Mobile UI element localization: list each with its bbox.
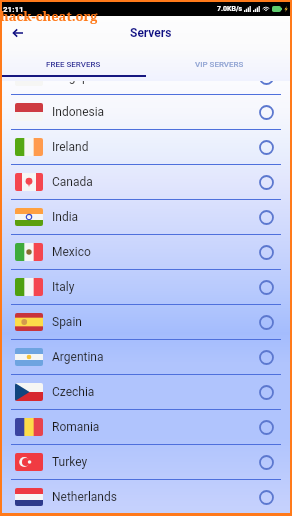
button[interactable]: Argentina: [0, 340, 292, 374]
staticText: Argentina: [52, 350, 104, 364]
button[interactable]: Ireland: [0, 130, 292, 164]
button[interactable]: VIP SERVERS: [146, 49, 292, 77]
staticText: Spain: [52, 315, 82, 329]
staticText: 7.0KB/s: [217, 5, 243, 13]
staticText: Indonesia: [52, 105, 105, 119]
staticText: FREE SERVERS: [46, 60, 101, 69]
staticText: Ireland: [52, 140, 89, 154]
staticText: Czechia: [52, 385, 95, 399]
button[interactable]: India: [0, 200, 292, 234]
staticText: India: [52, 210, 79, 224]
staticText: Turkey: [52, 455, 88, 469]
staticText: Mexico: [52, 245, 91, 259]
staticText: 21:11: [3, 5, 24, 14]
button[interactable]: Mexico: [0, 235, 292, 269]
button[interactable]: Spain: [0, 305, 292, 339]
staticText: Servers: [130, 26, 172, 40]
staticText: Singapore: [52, 81, 106, 84]
button[interactable]: Singapore: [0, 81, 292, 94]
button[interactable]: Netherlands: [0, 480, 292, 514]
button[interactable]: Turkey: [0, 445, 292, 479]
button[interactable]: FREE SERVERS: [0, 49, 146, 77]
button[interactable]: Italy: [0, 270, 292, 304]
staticText: hack-cheat.org: [0, 7, 98, 25]
button[interactable]: Indonesia: [0, 95, 292, 129]
button[interactable]: Czechia: [0, 375, 292, 409]
button[interactable]: Canada: [0, 165, 292, 199]
button[interactable]: Romania: [0, 410, 292, 444]
staticText: Canada: [52, 175, 93, 189]
staticText: Netherlands: [52, 490, 117, 504]
button[interactable]: Back: [7, 22, 29, 44]
staticText: Romania: [52, 420, 100, 434]
staticText: Italy: [52, 280, 75, 294]
staticText: VIP SERVERS: [195, 60, 244, 69]
